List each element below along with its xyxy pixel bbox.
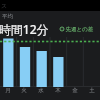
button[interactable]: 水 [32,87,49,94]
staticText: 火 [21,87,27,94]
staticText: ス [1,2,8,10]
staticText: 水 [38,87,44,94]
button[interactable]: 金 [66,87,83,94]
button[interactable]: 月 [0,87,16,94]
staticText: 平均 [2,13,13,20]
button[interactable]: 情報 [59,24,95,34]
staticText: 金 [72,87,78,94]
staticText: 土 [89,87,95,94]
staticText: 先週との差 [64,25,94,33]
button[interactable]: 火 [16,87,32,94]
staticText: 木 [55,87,61,94]
button[interactable] [0,37,100,87]
staticText: 月 [5,87,11,94]
button[interactable]: 土 [83,87,100,94]
staticText: 7時間12分 [0,21,49,37]
other: 情報 [60,27,64,31]
button[interactable]: 木 [49,87,66,94]
